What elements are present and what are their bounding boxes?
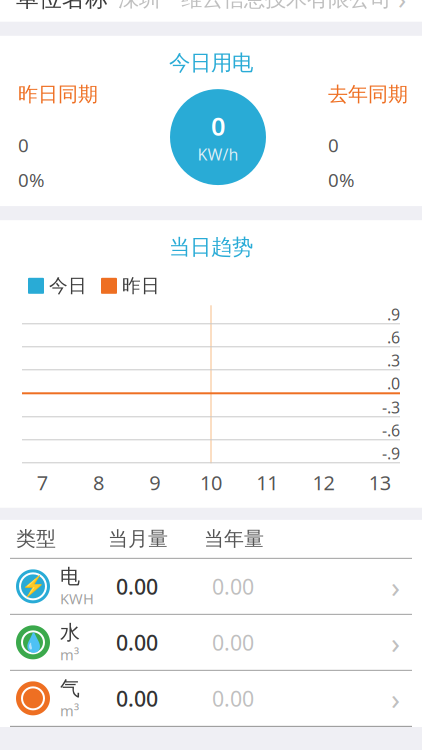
staticText: 0% xyxy=(18,167,45,192)
staticText: 8 xyxy=(93,469,104,496)
staticText: 当日趋势 xyxy=(169,234,253,260)
staticText: KWH xyxy=(60,589,94,608)
staticText: 0.00 xyxy=(212,628,254,656)
staticText: 0.00 xyxy=(212,684,254,712)
staticText: › xyxy=(391,567,400,606)
staticText: -.3 xyxy=(382,397,400,418)
staticText: 当年量 xyxy=(204,527,264,551)
staticText: .9 xyxy=(387,304,400,325)
staticText: 电 xyxy=(60,564,80,589)
staticText: .6 xyxy=(387,327,400,348)
staticText: 0% xyxy=(328,167,355,192)
staticText: m³ xyxy=(60,645,79,664)
button[interactable]: 气 xyxy=(0,671,422,727)
staticText: 气 xyxy=(60,676,80,701)
staticText: 去年同期 xyxy=(328,82,408,107)
staticText: m³ xyxy=(60,701,79,720)
staticText: 深圳一维云信息技术有限公司 xyxy=(118,0,391,12)
staticText: ⚡ xyxy=(20,575,45,598)
staticText: 今日用电 xyxy=(169,50,253,76)
button[interactable]: 💧 xyxy=(0,615,422,671)
staticText: 0.00 xyxy=(116,684,158,712)
staticText: 0.00 xyxy=(212,572,254,600)
button[interactable]: 单位名称 xyxy=(0,0,422,22)
staticText: .0 xyxy=(387,373,400,394)
staticText: › xyxy=(391,0,406,16)
staticText: 12 xyxy=(313,469,335,496)
staticText: 0.00 xyxy=(116,572,158,600)
staticText: 10 xyxy=(200,469,222,496)
staticText: 11 xyxy=(256,469,278,496)
staticText: KW/h xyxy=(197,144,238,165)
staticText: 13 xyxy=(369,469,391,496)
staticText: .3 xyxy=(387,350,400,371)
staticText: › xyxy=(391,623,400,662)
button[interactable]: ⚡ xyxy=(0,559,422,615)
staticText: 0 xyxy=(328,133,339,157)
staticText: 当月量 xyxy=(108,527,168,551)
staticText: 💧 xyxy=(21,632,44,653)
staticText: 9 xyxy=(149,469,160,496)
staticText: 0 xyxy=(211,109,225,143)
staticText: › xyxy=(391,679,400,718)
staticText: 单位名称 xyxy=(16,0,108,13)
staticText: 类型 xyxy=(16,527,56,551)
staticText: 昨日 xyxy=(122,274,160,297)
staticText: 0.00 xyxy=(116,628,158,656)
staticText: -.9 xyxy=(382,443,400,464)
staticText: 水 xyxy=(60,620,80,645)
staticText: -.6 xyxy=(382,420,400,441)
staticText: 昨日同期 xyxy=(18,82,98,107)
staticText: 7 xyxy=(37,469,48,496)
staticText: 今日 xyxy=(49,274,87,297)
staticText: 0 xyxy=(18,133,29,157)
